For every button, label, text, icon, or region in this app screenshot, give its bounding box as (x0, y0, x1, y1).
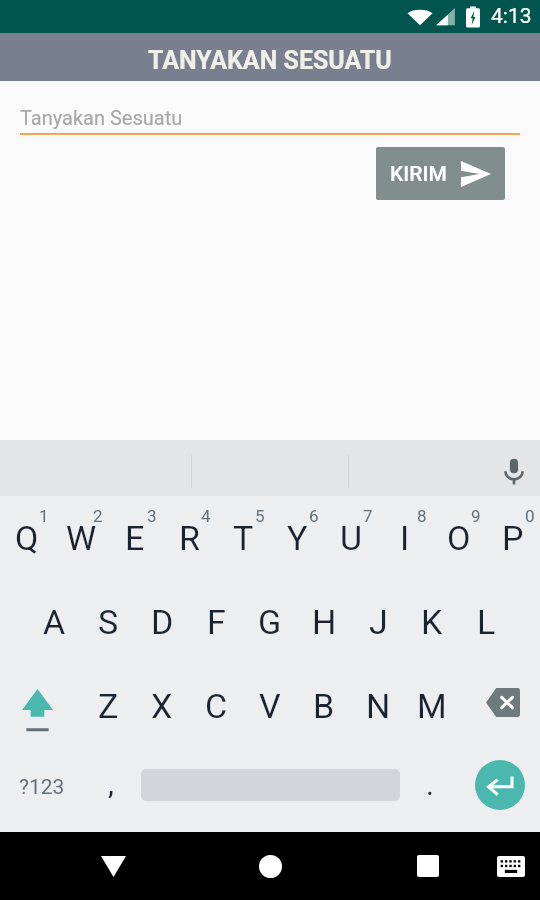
button[interactable]: Back (83, 832, 143, 900)
staticText: D (151, 602, 174, 642)
staticText: . (426, 767, 434, 802)
button[interactable]: F (189, 580, 243, 664)
staticText: A (43, 602, 66, 642)
staticText: 0 (525, 506, 535, 526)
button[interactable]: P (486, 496, 540, 580)
button[interactable]: Z (81, 664, 135, 748)
button[interactable]: R (162, 496, 216, 580)
staticText: 6 (309, 506, 319, 526)
staticText: P (502, 518, 524, 558)
button[interactable]: E (108, 496, 162, 580)
staticText: B (313, 686, 335, 726)
staticText: N (366, 686, 391, 726)
staticText: 8 (417, 506, 427, 526)
staticText: 7 (363, 506, 373, 526)
staticText: Y (287, 518, 308, 558)
staticText: 9 (471, 506, 481, 526)
staticText: O (447, 518, 471, 558)
staticText: G (258, 602, 282, 642)
button[interactable]: Switch keyboard (486, 832, 536, 900)
button[interactable]: O (432, 496, 486, 580)
staticText: Q (15, 518, 39, 558)
button[interactable]: Enter (460, 743, 540, 827)
staticText: F (207, 602, 226, 642)
button[interactable]: ?123 (0, 743, 81, 827)
staticText: 4 (201, 506, 211, 526)
staticText: KIRIM (390, 162, 447, 187)
button[interactable]: H (297, 580, 351, 664)
staticText: X (151, 686, 173, 726)
button[interactable]: K (405, 580, 459, 664)
staticText: L (477, 602, 496, 642)
staticText: , (108, 766, 114, 801)
staticText: S (98, 602, 119, 642)
staticText: 2 (93, 506, 103, 526)
button[interactable]: N (351, 664, 405, 748)
button[interactable]: I (378, 496, 432, 580)
button[interactable]: G (243, 580, 297, 664)
button[interactable]: Home (240, 832, 300, 900)
button[interactable]: U (324, 496, 378, 580)
button[interactable]: Y (270, 496, 324, 580)
button[interactable]: C (189, 664, 243, 748)
button[interactable]: D (135, 580, 189, 664)
staticText: T (233, 518, 254, 558)
staticText: K (421, 602, 443, 642)
staticText: U (340, 518, 363, 558)
button[interactable]: A (27, 580, 81, 664)
button[interactable]: X (135, 664, 189, 748)
button[interactable]: Shift (0, 664, 81, 748)
button[interactable]: KIRIM (376, 147, 505, 200)
button[interactable]: W (54, 496, 108, 580)
button[interactable]: V (243, 664, 297, 748)
staticText: C (205, 686, 228, 726)
button[interactable]: Q (0, 496, 54, 580)
button[interactable]: Tanyakan Sesuatu (20, 106, 420, 132)
staticText: ?123 (19, 775, 65, 800)
staticText: J (369, 602, 388, 642)
staticText: E (125, 518, 145, 558)
button[interactable]: . (400, 743, 460, 827)
button[interactable]: S (81, 580, 135, 664)
staticText: Z (98, 686, 119, 726)
button[interactable]: Recent apps (398, 832, 458, 900)
button[interactable]: Voice input (488, 440, 540, 496)
staticText: I (400, 518, 410, 558)
staticText: M (417, 686, 447, 726)
staticText: 1 (39, 506, 49, 526)
staticText: R (179, 518, 200, 558)
button[interactable]: TANYAKAN SESUATU (0, 33, 540, 81)
button[interactable]: T (216, 496, 270, 580)
button[interactable]: B (297, 664, 351, 748)
button[interactable]: J (351, 580, 405, 664)
button[interactable]: M (405, 664, 459, 748)
staticText: V (259, 686, 281, 726)
staticText: 4:13 (491, 4, 532, 29)
button[interactable]: L (459, 580, 513, 664)
staticText: W (66, 518, 97, 558)
staticText: 5 (255, 506, 265, 526)
staticText: H (312, 602, 337, 642)
button[interactable]: , (81, 743, 141, 827)
staticText: TANYAKAN SESUATU (148, 46, 392, 75)
staticText: 3 (147, 506, 157, 526)
button[interactable] (141, 743, 400, 827)
staticText: Tanyakan Sesuatu (20, 106, 183, 129)
button[interactable]: Backspace (459, 664, 540, 748)
